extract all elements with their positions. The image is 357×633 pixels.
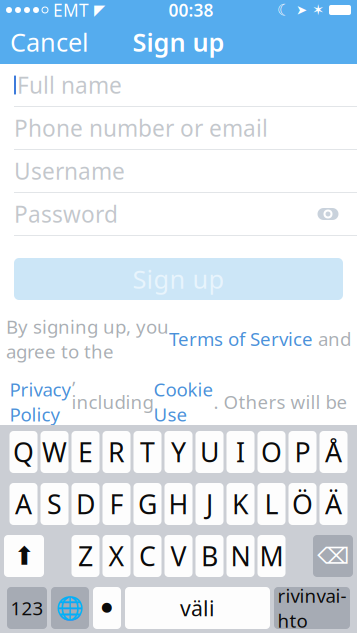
staticText: E bbox=[78, 434, 93, 470]
button[interactable]: W bbox=[40, 431, 68, 473]
staticText: R bbox=[108, 434, 125, 470]
staticText: B bbox=[201, 538, 218, 574]
button[interactable]: H bbox=[164, 483, 192, 525]
staticText: ✶ bbox=[312, 2, 324, 18]
staticText: C bbox=[139, 538, 156, 574]
staticText: Å bbox=[325, 434, 342, 470]
staticText: Privacy Policy bbox=[9, 377, 71, 427]
button[interactable]: J bbox=[195, 483, 223, 525]
button[interactable]: S bbox=[40, 483, 68, 525]
staticText: . Others will be bbox=[213, 389, 347, 414]
button[interactable]: ⬆︎ bbox=[4, 535, 44, 577]
button[interactable]: I bbox=[226, 431, 254, 473]
button[interactable]: R bbox=[102, 431, 130, 473]
staticText: By signing up, you agree to the bbox=[6, 314, 169, 364]
button[interactable]: M bbox=[257, 535, 285, 577]
button[interactable]: väli bbox=[125, 587, 270, 629]
button[interactable]: B bbox=[195, 535, 223, 577]
staticText: V bbox=[170, 538, 186, 574]
button[interactable]: L bbox=[257, 483, 285, 525]
staticText: Ö bbox=[292, 486, 313, 522]
button[interactable]: G bbox=[133, 483, 161, 525]
staticText: Q bbox=[13, 434, 34, 470]
staticText: Cookie Use bbox=[153, 377, 213, 427]
button[interactable]: Cancel bbox=[0, 20, 99, 64]
button[interactable]: V bbox=[164, 535, 192, 577]
button[interactable]: Ä bbox=[319, 483, 347, 525]
staticText: L bbox=[264, 486, 278, 522]
staticText: M bbox=[259, 538, 283, 574]
staticText: Y bbox=[171, 434, 186, 470]
button[interactable]: Z bbox=[71, 535, 99, 577]
button[interactable]: A bbox=[9, 483, 37, 525]
staticText: and bbox=[313, 326, 351, 351]
button[interactable]: 123 bbox=[7, 587, 47, 629]
button[interactable]: N bbox=[226, 535, 254, 577]
button[interactable]: E bbox=[71, 431, 99, 473]
staticText: U bbox=[200, 434, 219, 470]
staticText: 🌐 bbox=[56, 595, 84, 621]
button[interactable]: Å bbox=[319, 431, 347, 473]
staticText: Password bbox=[14, 199, 118, 229]
button[interactable]: 🌐 bbox=[51, 587, 89, 629]
staticText: H bbox=[168, 486, 188, 522]
staticText: Cancel bbox=[10, 25, 89, 59]
staticText: ➤ bbox=[296, 2, 307, 17]
staticText: ⬆︎ bbox=[13, 542, 34, 570]
staticText: F bbox=[109, 486, 123, 522]
staticText: ☾ bbox=[277, 1, 291, 19]
button[interactable]: rivinvaihto bbox=[274, 587, 350, 629]
button[interactable]: Show password bbox=[313, 199, 343, 229]
staticText: Full name bbox=[17, 70, 122, 100]
button[interactable]: F bbox=[102, 483, 130, 525]
staticText: rivinvaihto bbox=[277, 583, 346, 633]
staticText: Ä bbox=[325, 486, 342, 522]
button[interactable]: Sign up bbox=[14, 258, 343, 300]
button[interactable]: Q bbox=[9, 431, 37, 473]
staticText: Phone number or email bbox=[14, 113, 268, 143]
button[interactable]: ⌫ bbox=[313, 535, 353, 577]
staticText: P bbox=[294, 434, 310, 470]
button[interactable]: Ö bbox=[288, 483, 316, 525]
staticText: T bbox=[140, 434, 155, 470]
button[interactable]: D bbox=[71, 483, 99, 525]
staticText: EMT bbox=[53, 0, 89, 21]
button[interactable]: T bbox=[133, 431, 161, 473]
button[interactable]: U bbox=[195, 431, 223, 473]
staticText: O bbox=[261, 434, 282, 470]
button[interactable]: C bbox=[133, 535, 161, 577]
button[interactable]: ⏺ bbox=[93, 587, 121, 629]
staticText: Sign up bbox=[132, 25, 224, 59]
staticText: I bbox=[236, 434, 245, 470]
staticText: N bbox=[230, 538, 250, 574]
staticText: J bbox=[206, 486, 213, 522]
button[interactable]: K bbox=[226, 483, 254, 525]
staticText: väli bbox=[180, 594, 215, 622]
button[interactable]: P bbox=[288, 431, 316, 473]
staticText: D bbox=[76, 486, 95, 522]
staticText: Username bbox=[14, 156, 125, 186]
staticText: Z bbox=[78, 538, 93, 574]
staticText: , including bbox=[71, 365, 153, 439]
staticText: 123 bbox=[10, 596, 43, 620]
staticText: ⌫ bbox=[317, 543, 349, 569]
staticText: A bbox=[15, 486, 32, 522]
staticText: X bbox=[108, 538, 124, 574]
staticText: Sign up bbox=[132, 262, 224, 296]
button[interactable]: X bbox=[102, 535, 130, 577]
staticText: W bbox=[42, 434, 67, 470]
staticText: S bbox=[47, 486, 62, 522]
staticText: Terms of Service bbox=[169, 326, 313, 351]
staticText: 00:38 bbox=[168, 0, 213, 21]
button[interactable]: Y bbox=[164, 431, 192, 473]
staticText: G bbox=[138, 486, 157, 522]
staticText: ◤ bbox=[94, 2, 105, 18]
button[interactable]: O bbox=[257, 431, 285, 473]
staticText: ⏺ bbox=[101, 598, 112, 618]
staticText: K bbox=[232, 486, 249, 522]
